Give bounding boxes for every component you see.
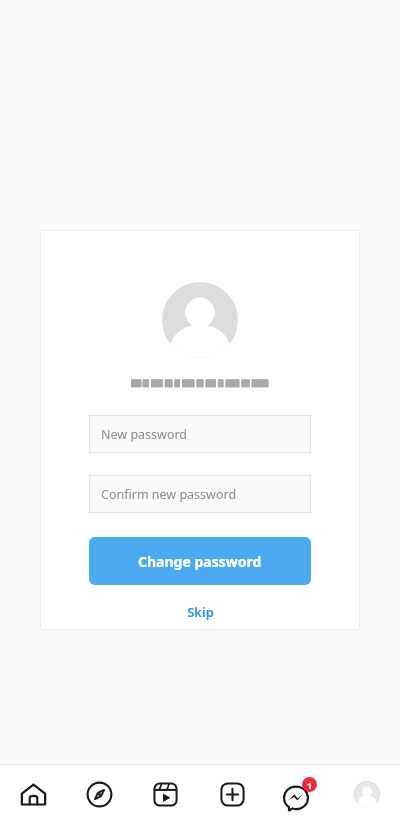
button[interactable]: Skip	[140, 599, 260, 625]
staticText: Skip	[187, 603, 214, 621]
staticText: 1	[307, 779, 313, 791]
button[interactable]: Messages	[266, 765, 333, 823]
button[interactable]: Create	[199, 765, 266, 823]
staticText: Confirm new password	[101, 486, 237, 503]
button[interactable]: Profile	[333, 765, 400, 823]
button[interactable]: Confirm new password	[89, 475, 311, 513]
staticText: Change password	[138, 552, 262, 571]
button[interactable]: New password	[89, 415, 311, 453]
staticText: New password	[101, 426, 188, 443]
button[interactable]: Explore	[66, 765, 132, 823]
button[interactable]: Home	[0, 765, 66, 823]
button[interactable]: Reels	[132, 765, 199, 823]
button[interactable]: Change password	[89, 537, 311, 585]
